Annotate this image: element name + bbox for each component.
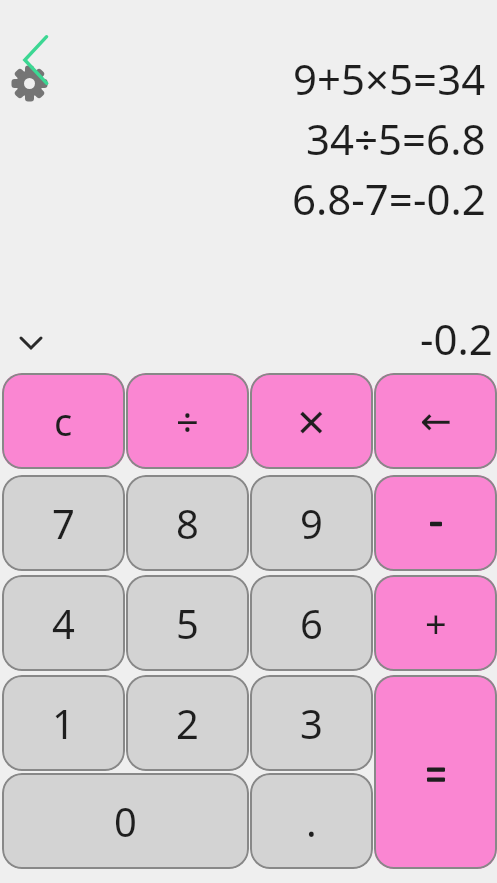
button[interactable]: 0 — [2, 773, 249, 869]
staticText: 9 — [300, 496, 323, 550]
button[interactable] — [374, 675, 497, 869]
staticText: 6.8-7=-0.2 — [292, 170, 486, 227]
staticText: -0.2 — [420, 310, 493, 367]
staticText: c — [54, 395, 73, 447]
button[interactable]: + — [374, 575, 497, 671]
staticText: 4 — [52, 596, 75, 650]
button[interactable]: c — [2, 373, 125, 469]
staticText: 9+5×5=34 — [293, 50, 486, 107]
button[interactable] — [374, 475, 497, 571]
staticText: 3 — [300, 696, 323, 750]
staticText: 5 — [176, 596, 199, 650]
button[interactable]: 2 — [126, 675, 249, 771]
staticText: . — [306, 794, 317, 848]
staticText: ÷ — [176, 394, 199, 448]
button[interactable] — [0, 0, 110, 120]
button[interactable]: × — [250, 373, 373, 469]
button[interactable]: 1 — [2, 675, 125, 771]
staticText: 7 — [52, 496, 75, 550]
button[interactable]: 5 — [126, 575, 249, 671]
button[interactable]: 6 — [250, 575, 373, 671]
staticText: ← — [420, 399, 452, 443]
staticText: 0 — [114, 794, 137, 848]
staticText: 2 — [176, 696, 199, 750]
button[interactable]: 9 — [250, 475, 373, 571]
button[interactable]: 4 — [2, 575, 125, 671]
staticText: 6 — [300, 596, 323, 650]
staticText: 8 — [176, 496, 199, 550]
staticText: × — [297, 387, 326, 455]
button[interactable]: 8 — [126, 475, 249, 571]
button[interactable]: ← — [374, 373, 497, 469]
button[interactable]: . — [250, 773, 373, 869]
button[interactable] — [14, 330, 48, 356]
button[interactable]: 7 — [2, 475, 125, 571]
button[interactable]: ÷ — [126, 373, 249, 469]
staticText: 1 — [52, 696, 75, 750]
staticText: 34÷5=6.8 — [306, 110, 486, 167]
button[interactable]: 3 — [250, 675, 373, 771]
staticText: + — [425, 597, 447, 649]
